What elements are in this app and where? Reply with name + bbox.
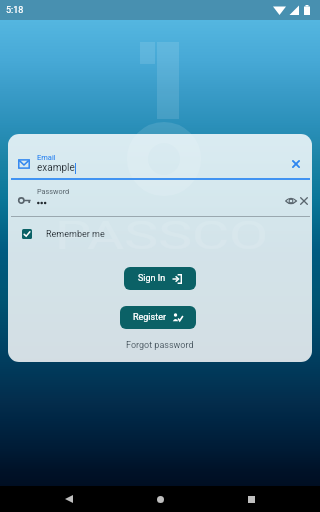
button[interactable]: Home	[138, 486, 182, 512]
button[interactable]: Sign In	[124, 267, 196, 290]
staticText: PASSCO	[55, 214, 269, 259]
staticText: Forgot password	[126, 340, 194, 351]
staticText: 5:18	[6, 5, 24, 16]
button[interactable]: Forgot password	[120, 338, 200, 353]
staticText: Register	[133, 312, 166, 323]
button[interactable]: Show password	[280, 190, 302, 212]
staticText: Email	[37, 153, 56, 162]
staticText: Remember me	[46, 229, 105, 240]
button[interactable]: Back	[47, 486, 91, 512]
staticText: Sign In	[138, 273, 166, 284]
button[interactable]: Clear email	[284, 152, 308, 176]
button[interactable]: Clear password	[293, 190, 312, 212]
staticText: example	[37, 162, 75, 174]
button[interactable]: Recent apps	[229, 486, 273, 512]
button[interactable]: Register	[120, 306, 196, 329]
staticText: Password	[37, 187, 70, 196]
button[interactable]: Remember me	[22, 223, 312, 245]
